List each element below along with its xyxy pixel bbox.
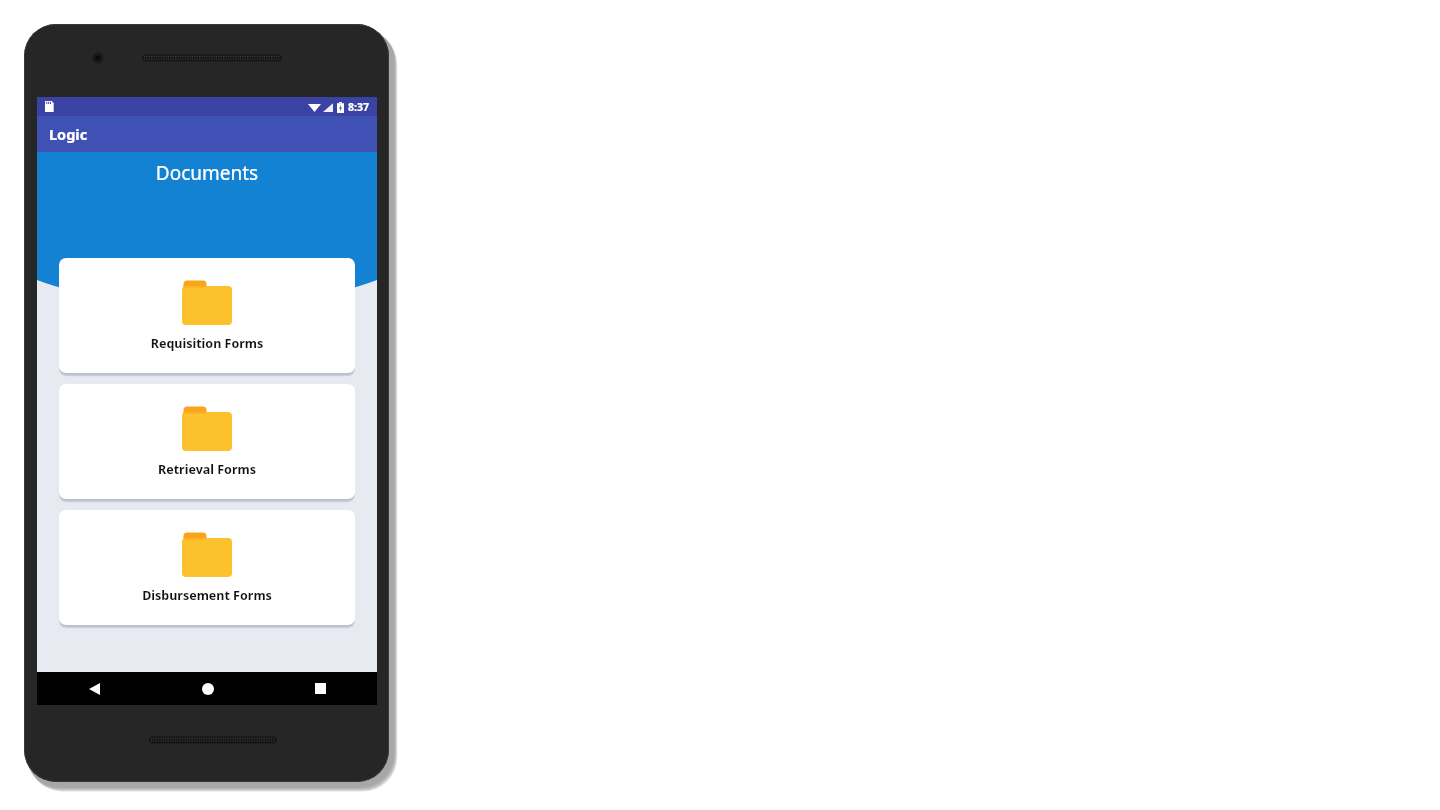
button[interactable]: Back (37, 672, 151, 705)
other: Folder (182, 278, 232, 325)
button[interactable]: Home (151, 672, 264, 705)
button[interactable]: Folder (59, 384, 355, 499)
other: Folder (182, 404, 232, 451)
other: Folder (182, 530, 232, 577)
button[interactable]: Logic (37, 116, 377, 152)
staticText: 8:37 (348, 100, 369, 114)
button[interactable]: Folder (59, 510, 355, 625)
staticText: Logic (49, 124, 88, 144)
button[interactable]: Folder (59, 258, 355, 373)
staticText: Documents (37, 160, 377, 186)
staticText: Requisition Forms (59, 335, 355, 352)
staticText: Disbursement Forms (59, 587, 355, 604)
staticText: Retrieval Forms (59, 461, 355, 478)
button[interactable]: Recent apps (264, 672, 377, 705)
